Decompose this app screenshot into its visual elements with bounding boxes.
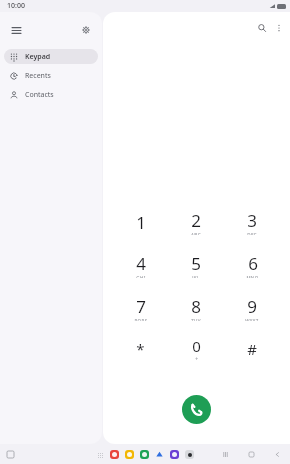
- staticText: DEF: [247, 232, 257, 235]
- button[interactable]: All apps: [95, 450, 105, 460]
- button[interactable]: Gmail: [109, 449, 120, 460]
- button[interactable]: 3: [224, 209, 280, 235]
- button[interactable]: Search: [253, 19, 270, 36]
- button[interactable]: 8: [168, 295, 224, 321]
- staticText: JKL: [192, 275, 200, 278]
- staticText: 1: [136, 211, 146, 234]
- button[interactable]: 4: [113, 252, 168, 278]
- staticText: TUV: [191, 318, 201, 321]
- button[interactable]: Phone: [139, 449, 150, 460]
- staticText: 6: [248, 252, 258, 275]
- staticText: 4: [136, 252, 146, 275]
- staticText: +: [195, 356, 199, 362]
- button[interactable]: Messages: [124, 449, 135, 460]
- button[interactable]: 5: [168, 252, 224, 278]
- staticText: WXYZ: [245, 318, 259, 321]
- button[interactable]: Call: [182, 395, 211, 424]
- staticText: *: [136, 339, 145, 359]
- staticText: ABC: [191, 232, 201, 235]
- button[interactable]: Contacts: [4, 87, 98, 102]
- button[interactable]: Browser: [169, 449, 180, 460]
- button[interactable]: Screenshot: [5, 449, 16, 460]
- button[interactable]: 7: [113, 295, 168, 321]
- button[interactable]: 0: [168, 336, 224, 362]
- staticText: GHI: [136, 275, 146, 278]
- button[interactable]: 6: [224, 252, 280, 278]
- staticText: 9: [247, 295, 257, 318]
- staticText: Keypad: [25, 52, 51, 62]
- staticText: 10:00: [7, 1, 25, 11]
- staticText: #: [247, 339, 257, 359]
- button[interactable]: Settings: [76, 20, 96, 40]
- staticText: 5: [191, 252, 201, 275]
- button[interactable]: Recents: [4, 68, 98, 83]
- staticText: Contacts: [25, 90, 54, 100]
- staticText: 8: [191, 295, 201, 318]
- button[interactable]: *: [113, 336, 168, 362]
- button[interactable]: Drive: [154, 449, 165, 460]
- button[interactable]: Home: [245, 448, 257, 460]
- button[interactable]: More options: [270, 19, 287, 36]
- button[interactable]: 1: [113, 209, 168, 235]
- staticText: 0: [192, 336, 201, 356]
- staticText: Recents: [25, 71, 51, 81]
- button[interactable]: Back: [271, 448, 283, 460]
- staticText: MNO: [246, 275, 259, 278]
- button[interactable]: Keypad: [4, 49, 98, 64]
- button[interactable]: Camera: [184, 449, 195, 460]
- staticText: 7: [136, 295, 146, 318]
- button[interactable]: Recent apps: [219, 448, 231, 460]
- staticText: 2: [191, 209, 201, 232]
- staticText: 3: [247, 209, 257, 232]
- button[interactable]: Menu: [6, 20, 26, 40]
- staticText: PQRS: [134, 318, 148, 321]
- button[interactable]: #: [224, 336, 280, 362]
- button[interactable]: 2: [168, 209, 224, 235]
- button[interactable]: 9: [224, 295, 280, 321]
